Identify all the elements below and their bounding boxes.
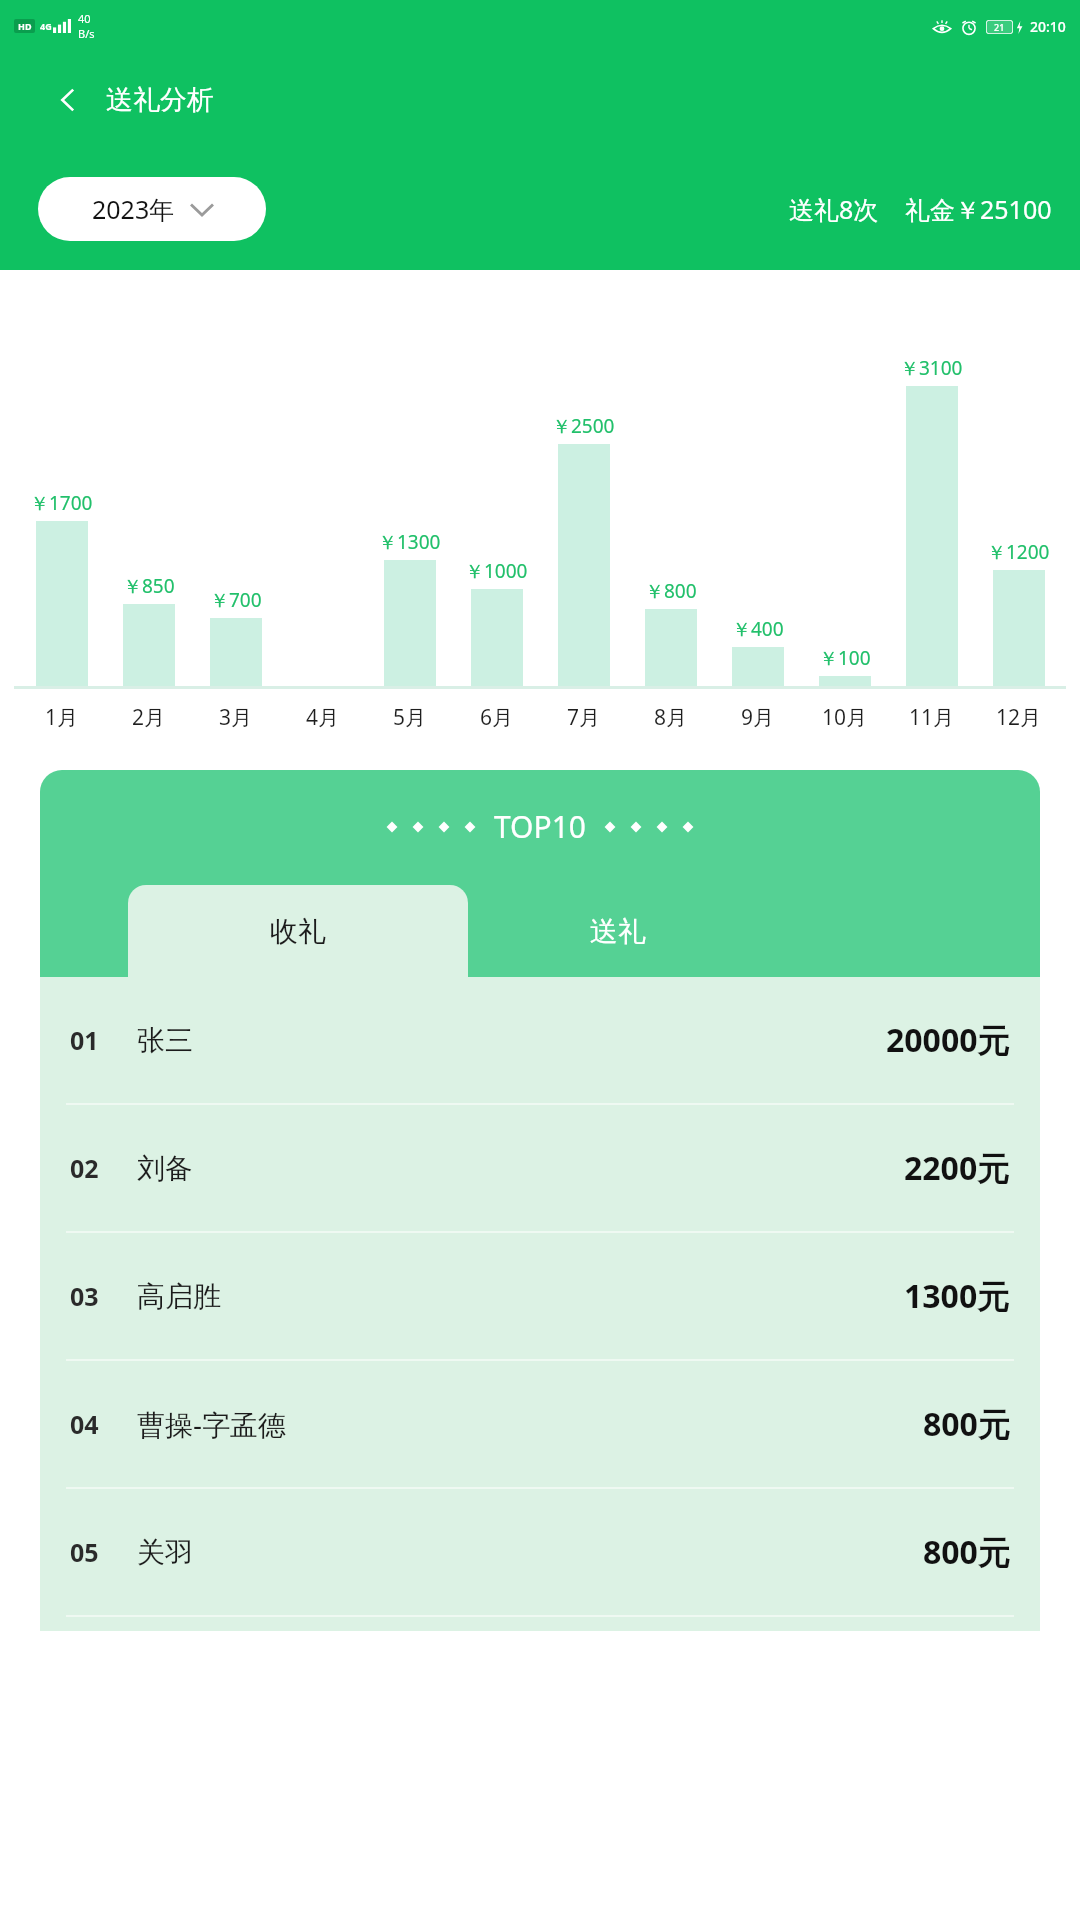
staticText: 8月	[654, 703, 688, 732]
staticText: 20000元	[886, 1018, 1010, 1062]
staticText: 送礼分析	[106, 83, 214, 117]
staticText: ￥100	[819, 645, 871, 671]
staticText: 送礼	[590, 914, 646, 949]
staticText: 800元	[923, 1402, 1010, 1446]
staticText: 02	[70, 1151, 99, 1185]
staticText: 高启胜	[137, 1279, 221, 1314]
staticText: 9月	[741, 703, 775, 732]
button[interactable]: Back	[44, 76, 92, 124]
staticText: ￥1000	[465, 558, 528, 584]
button[interactable]: 03	[40, 1233, 1040, 1359]
button[interactable]: 05	[40, 1489, 1040, 1615]
staticText: ￥1700	[30, 490, 93, 516]
other: Alarm	[961, 19, 977, 35]
button[interactable]: 2023年	[38, 177, 266, 241]
staticText: 2023年	[92, 192, 175, 226]
staticText: 10月	[822, 703, 868, 732]
staticText: ￥400	[732, 616, 784, 642]
staticText: HD	[18, 20, 32, 32]
other: Eye protection mode	[932, 20, 952, 34]
staticText: 40	[78, 11, 91, 26]
button[interactable]: 收礼	[128, 885, 468, 977]
button[interactable]: 02	[40, 1105, 1040, 1231]
button[interactable]: 送礼	[468, 885, 768, 977]
staticText: 5月	[393, 703, 427, 732]
staticText: 张三	[137, 1023, 193, 1058]
staticText: 12月	[996, 703, 1042, 732]
staticText: ￥700	[210, 587, 262, 613]
button[interactable]: 04	[40, 1361, 1040, 1487]
staticText: ￥800	[645, 578, 697, 604]
staticText: 11月	[909, 703, 955, 732]
staticText: 关羽	[137, 1535, 193, 1570]
staticText: ￥3100	[900, 355, 963, 381]
staticText: 1300元	[904, 1274, 1010, 1318]
staticText: 03	[70, 1279, 99, 1313]
staticText: 2200元	[904, 1146, 1010, 1190]
staticText: 4G	[40, 20, 52, 32]
staticText: 送礼8次	[789, 192, 879, 226]
staticText: 05	[70, 1535, 99, 1569]
staticText: 01	[70, 1023, 99, 1057]
staticText: 收礼	[270, 914, 326, 949]
staticText: TOP10	[494, 806, 586, 847]
staticText: 3月	[219, 703, 253, 732]
button[interactable]: 01	[40, 977, 1040, 1103]
staticText: ￥1200	[987, 539, 1050, 565]
staticText: 曹操-字孟德	[137, 1405, 287, 1443]
staticText: 刘备	[137, 1151, 193, 1186]
staticText: 20:10	[1030, 17, 1066, 36]
staticText: 6月	[480, 703, 514, 732]
staticText: ￥850	[123, 573, 175, 599]
staticText: 21	[994, 21, 1005, 33]
staticText: 1月	[45, 703, 79, 732]
staticText: 2月	[132, 703, 166, 732]
staticText: 04	[70, 1407, 99, 1441]
staticText: B/s	[78, 26, 95, 41]
staticText: 800元	[923, 1530, 1010, 1574]
staticText: ￥2500	[552, 413, 615, 439]
staticText: 4月	[306, 703, 340, 732]
staticText: 7月	[567, 703, 601, 732]
staticText: ￥1300	[378, 529, 441, 555]
staticText: 礼金￥25100	[905, 192, 1052, 226]
